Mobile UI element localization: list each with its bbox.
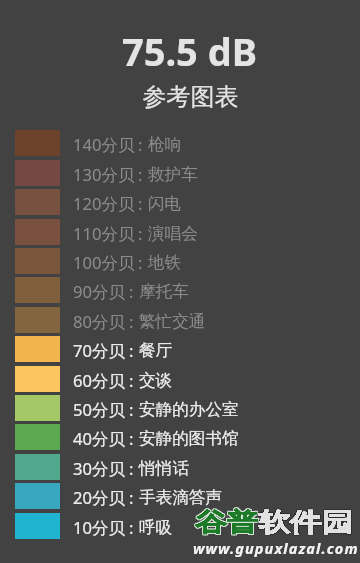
staticText: 软件园 <box>258 507 353 539</box>
staticText: 谷普 <box>195 507 258 539</box>
staticText: : <box>129 398 134 421</box>
button[interactable]: 40分贝 <box>0 424 360 450</box>
staticText: 100分贝 <box>73 251 135 274</box>
staticText: 软件园 <box>258 507 353 539</box>
staticText: : <box>129 280 134 303</box>
staticText: : <box>138 133 143 156</box>
staticText: : <box>129 486 134 509</box>
staticText: 软件园 <box>257 507 352 539</box>
staticText: 软件园 <box>258 507 353 539</box>
staticText: 谷普 <box>195 507 258 539</box>
staticText: : <box>129 427 134 450</box>
staticText: 谷普 <box>195 507 258 539</box>
staticText: : <box>129 369 134 392</box>
staticText: 地铁 <box>148 252 182 273</box>
staticText: 软件园 <box>258 507 353 539</box>
staticText: 谷普 <box>196 506 259 538</box>
staticText: : <box>129 310 134 333</box>
staticText: 40分贝 <box>73 427 126 450</box>
staticText: 90分贝 <box>73 280 126 303</box>
button[interactable]: 60分贝 <box>0 366 360 392</box>
staticText: 安静的图书馆 <box>139 428 239 449</box>
staticText: 20分贝 <box>73 486 126 509</box>
staticText: 10分贝 <box>73 516 126 539</box>
staticText: 闪电 <box>148 193 182 214</box>
staticText: : <box>138 192 143 215</box>
staticText: 手表滴答声 <box>139 487 222 508</box>
button[interactable]: 140分贝 <box>0 130 360 156</box>
staticText: : <box>129 516 134 539</box>
staticText: 110分贝 <box>73 222 135 245</box>
staticText: 谷普 <box>195 507 258 539</box>
button[interactable]: 20分贝 <box>0 483 360 509</box>
staticText: 软件园 <box>258 506 353 538</box>
button[interactable]: 130分贝 <box>0 160 360 186</box>
staticText: 50分贝 <box>73 398 126 421</box>
staticText: : <box>129 457 134 480</box>
button[interactable]: 50分贝 <box>0 395 360 421</box>
staticText: 演唱会 <box>148 223 198 244</box>
staticText: 呼吸 <box>139 517 173 538</box>
staticText: 软件园 <box>257 508 352 539</box>
staticText: 谷普 <box>194 508 257 539</box>
staticText: 谷普 <box>195 507 258 539</box>
staticText: 软件园 <box>258 507 353 539</box>
button[interactable]: 100分贝 <box>0 248 360 274</box>
staticText: : <box>138 251 143 274</box>
staticText: 救护车 <box>148 164 198 185</box>
staticText: : <box>138 163 143 186</box>
staticText: 75.5 dB <box>19 25 360 77</box>
staticText: 谷普 <box>196 508 259 539</box>
staticText: 安静的办公室 <box>139 399 239 420</box>
staticText: 60分贝 <box>73 369 126 392</box>
staticText: : <box>138 222 143 245</box>
staticText: 谷普 <box>195 507 258 539</box>
staticText: 软件园 <box>258 507 353 539</box>
staticText: 软件园 <box>258 508 353 539</box>
staticText: 30分贝 <box>73 457 126 480</box>
staticText: 谷普 <box>195 508 258 539</box>
button[interactable]: 80分贝 <box>0 307 360 333</box>
staticText: 软件园 <box>259 506 354 538</box>
staticText: 交谈 <box>139 370 173 391</box>
staticText: 谷普 <box>195 507 258 539</box>
staticText: 谷普 <box>195 507 258 539</box>
button[interactable]: 120分贝 <box>0 189 360 215</box>
staticText: 繁忙交通 <box>139 311 206 332</box>
staticText: 餐厅 <box>139 340 173 361</box>
staticText: 悄悄话 <box>139 458 189 479</box>
staticText: 80分贝 <box>73 310 126 333</box>
staticText: 软件园 <box>258 507 353 539</box>
staticText: 谷普 <box>195 506 258 538</box>
staticText: www.gupuxlazal.com <box>193 538 359 558</box>
staticText: 120分贝 <box>73 192 135 215</box>
button[interactable]: 110分贝 <box>0 219 360 245</box>
staticText: 谷普 <box>194 507 257 539</box>
staticText: 软件园 <box>257 506 352 538</box>
staticText: 枪响 <box>148 134 182 155</box>
staticText: 软件园 <box>259 508 354 539</box>
button[interactable]: 30分贝 <box>0 454 360 480</box>
staticText: 软件园 <box>258 507 353 539</box>
staticText: 摩托车 <box>139 281 189 302</box>
staticText: 130分贝 <box>73 163 135 186</box>
button[interactable]: 10分贝 <box>0 513 360 539</box>
staticText: 70分贝 <box>73 339 126 362</box>
staticText: 谷普 <box>196 507 259 539</box>
button[interactable]: 90分贝 <box>0 277 360 303</box>
staticText: 软件园 <box>259 507 354 539</box>
staticText: 谷普 <box>195 507 258 539</box>
staticText: 140分贝 <box>73 133 135 156</box>
staticText: 谷普 <box>194 506 257 538</box>
staticText: 参考图表 <box>21 82 360 112</box>
staticText: 软件园 <box>258 507 353 539</box>
staticText: : <box>129 339 134 362</box>
button[interactable]: 70分贝 <box>0 336 360 362</box>
